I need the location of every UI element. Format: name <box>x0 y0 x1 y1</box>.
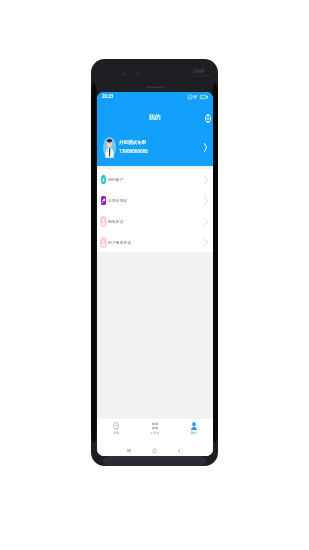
button[interactable]: Home <box>148 444 160 456</box>
button[interactable]: 隐私协议 <box>97 211 213 232</box>
staticText: 消息 <box>113 431 120 435</box>
staticText: 我的账户 <box>108 177 124 182</box>
staticText: 隐私协议 <box>108 219 124 224</box>
button[interactable]: 工作台 <box>135 419 174 443</box>
button[interactable]: Recents <box>123 444 135 456</box>
button[interactable]: 我的账户 <box>97 169 213 190</box>
button[interactable]: 外部测试专用 <box>97 129 213 163</box>
staticText: DUAL CAMERA <box>192 74 211 78</box>
staticText: 15966666666 <box>119 148 148 154</box>
button[interactable]: 我的 <box>174 419 213 443</box>
button[interactable]: 消息 <box>97 419 135 443</box>
button[interactable]: Back <box>173 444 185 456</box>
staticText: 我的 <box>190 431 197 435</box>
button[interactable]: Settings <box>203 112 213 125</box>
staticText: 用户服务协议 <box>108 240 132 245</box>
staticText: 分享给朋友 <box>108 198 128 203</box>
staticText: 外部测试专用 <box>119 140 146 146</box>
button[interactable]: 分享给朋友 <box>97 190 213 211</box>
button[interactable]: 用户服务协议 <box>97 232 213 252</box>
staticText: 我的 <box>149 113 161 120</box>
staticText: 工作台 <box>150 431 160 435</box>
staticText: 20:23 <box>102 93 114 99</box>
staticText: 24MP <box>193 68 205 74</box>
